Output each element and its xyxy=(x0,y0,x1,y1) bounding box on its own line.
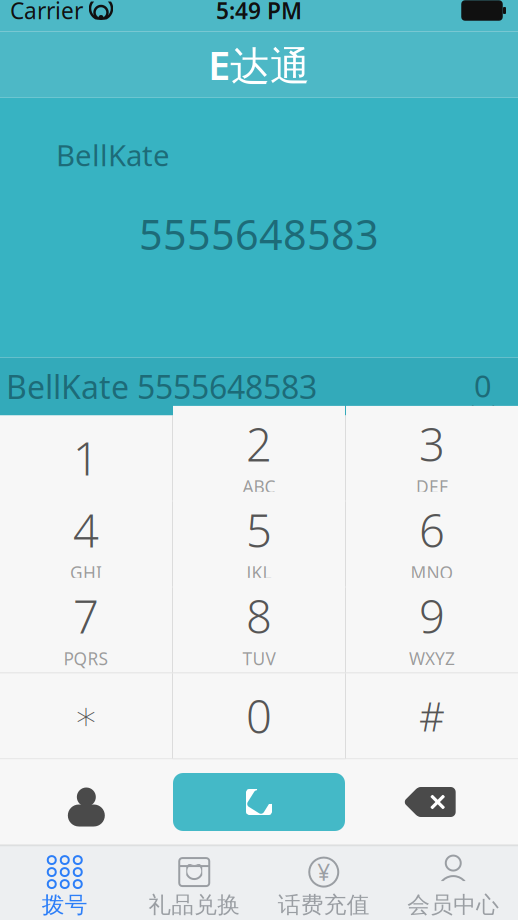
staticText: 5555648583 xyxy=(139,206,379,261)
button[interactable]: 2 xyxy=(173,415,345,500)
staticText: 5:49 PM xyxy=(216,0,302,25)
button[interactable]: ¥ xyxy=(259,850,388,919)
button[interactable]: Delete xyxy=(345,759,518,844)
button[interactable]: ∗ xyxy=(0,673,172,758)
button[interactable]: 8 xyxy=(173,587,345,672)
staticText: # xyxy=(419,689,445,742)
staticText: 话费充值 xyxy=(278,891,370,919)
staticText: ABC xyxy=(242,475,275,498)
staticText: GHI xyxy=(70,561,102,584)
staticText: ¥ xyxy=(317,857,330,887)
button[interactable]: 3 xyxy=(346,415,518,500)
button[interactable]: 9 xyxy=(346,587,518,672)
staticText: BellKate xyxy=(56,135,170,174)
button[interactable]: 拨号 xyxy=(0,850,129,919)
staticText: WXYZ xyxy=(409,647,455,670)
staticText: 2 xyxy=(246,414,272,474)
staticText: Carrier xyxy=(10,0,83,25)
button[interactable]: 会员中心 xyxy=(388,850,518,919)
staticText: 9 xyxy=(419,586,445,646)
button[interactable]: 0 xyxy=(173,673,345,758)
staticText: 3 xyxy=(419,414,445,474)
staticText: 会员中心 xyxy=(407,891,499,919)
button[interactable]: 5 xyxy=(173,501,345,586)
staticText: E达通 xyxy=(208,38,310,91)
button[interactable]: 1 xyxy=(0,415,172,500)
button[interactable]: 6 xyxy=(346,501,518,586)
staticText: 礼品兑换 xyxy=(148,891,240,919)
staticText: 7 xyxy=(73,586,99,646)
button[interactable]: 4 xyxy=(0,501,172,586)
button[interactable]: Contacts xyxy=(0,759,173,844)
button[interactable]: # xyxy=(346,673,518,758)
staticText: 1 xyxy=(73,428,99,488)
button[interactable]: Call xyxy=(173,759,345,844)
staticText: 0 xyxy=(474,365,492,406)
staticText: PQRS xyxy=(63,647,108,670)
button[interactable]: 礼品兑换 xyxy=(129,850,259,919)
staticText: ∗ xyxy=(73,693,98,739)
staticText: 0 xyxy=(246,686,272,746)
staticText: 8 xyxy=(246,586,272,646)
staticText: BellKate 5555648583 xyxy=(6,365,317,408)
staticText: 5 xyxy=(246,500,272,560)
staticText: DEF xyxy=(416,475,448,498)
staticText: 6 xyxy=(419,500,445,560)
button[interactable]: 7 xyxy=(0,587,172,672)
staticText: TUV xyxy=(242,647,275,670)
staticText: JKL xyxy=(246,561,271,584)
staticText: 4 xyxy=(73,500,99,560)
staticText: MNO xyxy=(410,561,453,584)
staticText: 拨号 xyxy=(42,891,88,919)
